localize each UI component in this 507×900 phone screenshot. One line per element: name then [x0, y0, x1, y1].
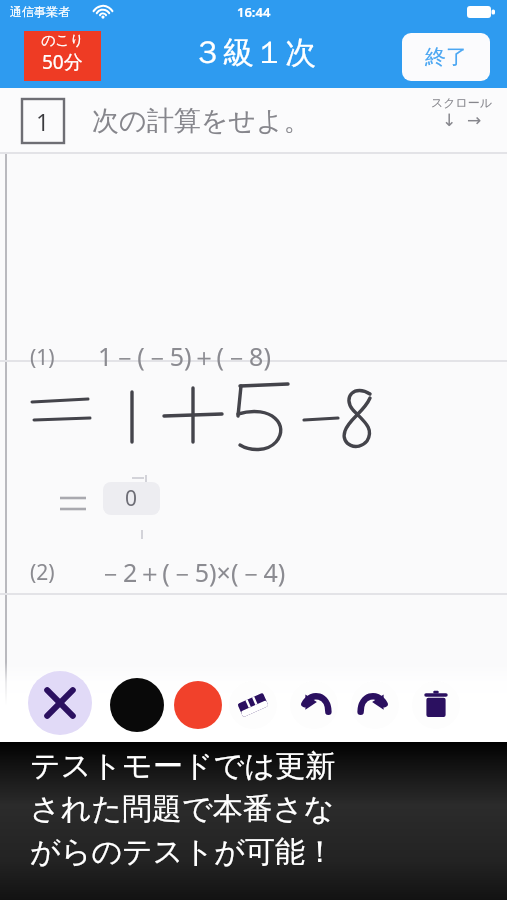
button[interactable]: Delete — [412, 681, 460, 729]
staticText: 3 — [234, 769, 243, 789]
button[interactable]: のこり — [24, 31, 101, 81]
button[interactable]: 0 — [103, 699, 160, 732]
staticText: －2＋(－5)×(－4) — [98, 555, 286, 589]
staticText: 1 — [36, 106, 50, 137]
staticText: －(－4 — [162, 774, 234, 808]
button[interactable]: 0 — [103, 482, 160, 515]
staticText: (－3) — [98, 774, 153, 808]
staticText: 2 — [153, 769, 162, 789]
staticText: (1) — [30, 343, 55, 372]
button[interactable]: Close — [28, 671, 92, 735]
staticText: (2) — [30, 558, 55, 587]
staticText: ↓ — [442, 110, 457, 130]
staticText: ３級１次 — [192, 33, 316, 72]
staticText: テストモードでは更新 — [30, 747, 335, 785]
staticText: (3) — [30, 775, 55, 804]
button[interactable]: 終了 — [402, 33, 490, 81]
staticText: ) — [243, 774, 251, 808]
staticText: がらのテストが可能！ — [30, 833, 335, 871]
button[interactable]: Undo — [290, 681, 338, 729]
staticText: 16:44 — [237, 3, 271, 21]
staticText: スクロール — [431, 95, 493, 110]
staticText: 50分 — [42, 49, 83, 75]
staticText: 終了 — [425, 44, 467, 70]
button[interactable]: Redo — [351, 681, 399, 729]
staticText: 0 — [125, 701, 138, 730]
staticText: → — [467, 110, 482, 130]
staticText: された問題で本番さな — [30, 790, 335, 828]
button[interactable]: Red pen — [174, 681, 222, 729]
button[interactable]: Black pen — [110, 678, 164, 732]
staticText: のこり — [41, 32, 84, 50]
staticText: 1－(－5)＋(－8) — [98, 339, 271, 373]
button[interactable]: Eraser — [229, 681, 277, 729]
staticText: 通信事業者 — [10, 4, 70, 19]
staticText: 次の計算をせよ。 — [92, 104, 311, 138]
staticText: 0 — [125, 484, 138, 513]
